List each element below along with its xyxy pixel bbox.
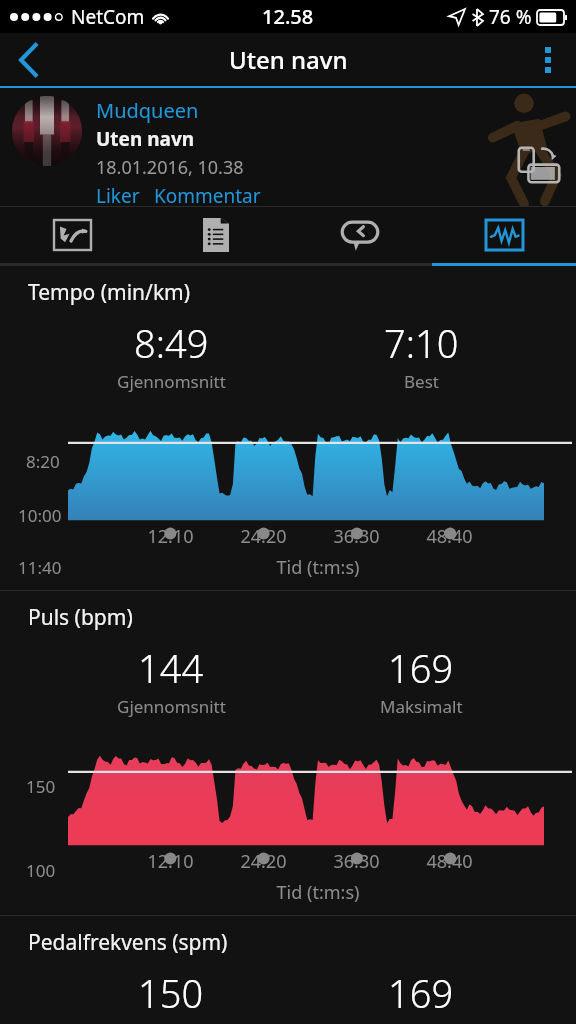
button[interactable]: Mer: [520, 33, 576, 86]
staticText: Pedalfrekvens (spm): [28, 928, 228, 957]
staticText: 36:30: [310, 524, 403, 549]
staticText: 48:40: [403, 524, 496, 549]
staticText: Kommentar: [154, 183, 261, 206]
staticText: 100: [26, 859, 56, 882]
staticText: 10:00: [18, 504, 62, 527]
button[interactable]: Liker: [96, 183, 140, 206]
staticText: Liker: [96, 183, 140, 206]
button[interactable]: Detaljer: [144, 207, 288, 263]
staticText: 150: [26, 775, 56, 798]
staticText: Uten navn: [229, 43, 348, 76]
staticText: Puls (bpm): [28, 603, 133, 632]
staticText: 48:40: [403, 849, 496, 874]
button[interactable]: [12, 96, 82, 166]
button[interactable]: Mudqueen: [96, 97, 199, 124]
staticText: Tid (t:m:s): [60, 555, 576, 580]
staticText: 169: [388, 967, 454, 1019]
staticText: Maksimalt: [380, 695, 463, 718]
staticText: Gjennomsnitt: [117, 695, 226, 718]
button[interactable]: Roter skjerm: [508, 136, 570, 198]
staticText: 8:20: [26, 450, 60, 473]
staticText: 169: [388, 642, 454, 694]
staticText: 36:30: [310, 849, 403, 874]
staticText: 12.58: [262, 3, 314, 30]
button[interactable]: Grafer: [432, 207, 576, 263]
staticText: Tempo (min/km): [28, 278, 191, 307]
staticText: 24:20: [217, 524, 310, 549]
button[interactable]: Kommentar: [154, 183, 261, 206]
staticText: Best: [404, 370, 439, 393]
staticText: Tid (t:m:s): [60, 880, 576, 905]
staticText: 12:10: [124, 524, 217, 549]
button[interactable]: Tilbake: [0, 33, 56, 86]
staticText: 18.01.2016, 10.38: [96, 155, 244, 180]
staticText: 76 %: [489, 4, 532, 30]
staticText: Mudqueen: [96, 97, 199, 124]
staticText: 8:49: [134, 317, 209, 369]
button[interactable]: Kart: [0, 207, 144, 263]
staticText: 144: [138, 642, 204, 694]
staticText: 24:20: [217, 849, 310, 874]
staticText: 150: [138, 967, 204, 1019]
staticText: Gjennomsnitt: [117, 370, 226, 393]
staticText: Uten navn: [96, 126, 195, 152]
button[interactable]: Runder: [288, 207, 432, 263]
staticText: 7:10: [384, 317, 459, 369]
staticText: 11:40: [18, 556, 62, 579]
staticText: NetCom: [71, 4, 145, 30]
staticText: 12:10: [124, 849, 217, 874]
